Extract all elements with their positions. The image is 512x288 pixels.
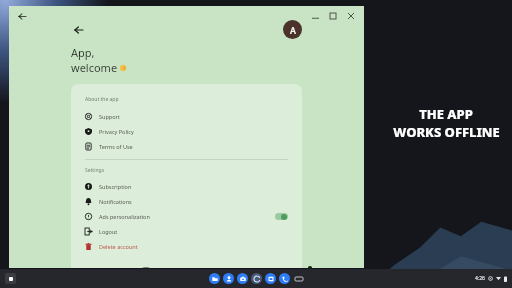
button[interactable]: Recents [293,273,304,284]
staticText: Privacy Policy [99,128,134,135]
staticText: A [290,24,296,36]
button[interactable]: Notifications [85,194,288,209]
button[interactable]: Phone [279,273,290,284]
staticText: Terms of Use [99,143,133,150]
button[interactable]: Maximize [326,9,340,23]
button[interactable]: Media [265,273,276,284]
button[interactable]: Files [209,273,220,284]
button[interactable]: Logout [85,224,288,239]
button[interactable]: Window back [15,9,29,23]
button[interactable]: Launcher [5,273,16,284]
staticText: About the app [85,96,119,103]
staticText: Subscription [99,183,132,190]
staticText: Notifications [99,198,132,205]
staticText: Logout [99,228,118,235]
button[interactable]: Camera [237,273,248,284]
button[interactable]: Support [85,109,288,124]
button[interactable]: Subscription [85,179,288,194]
staticText: App, [71,45,95,60]
button[interactable]: Delete account [85,239,288,254]
staticText: THE APP [419,105,473,123]
staticText: Delete account [99,243,138,250]
button[interactable]: Browser [251,273,262,284]
button[interactable]: Back [71,22,87,38]
button[interactable]: Privacy Policy [85,124,288,139]
staticText: Ads personalization [99,213,150,220]
staticText: 4:26 [475,275,485,282]
button[interactable]: Minimize [308,9,322,23]
button[interactable]: Ads personalization toggle [275,213,288,220]
staticText: Support [99,113,120,120]
button[interactable]: Ads personalization [85,209,288,224]
button[interactable]: Terms of Use [85,139,288,154]
staticText: WORKS OFFLINE [393,123,500,141]
button[interactable]: System tray [475,275,507,282]
staticText: Settings [85,167,105,174]
button[interactable]: Contacts [223,273,234,284]
button[interactable]: Close [344,9,358,23]
staticText: welcome [71,60,118,75]
button[interactable]: Profile avatar [283,20,302,39]
